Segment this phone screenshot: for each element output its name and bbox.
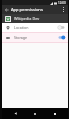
button[interactable]: Back: [2, 5, 11, 14]
button[interactable]: Back: [8, 108, 22, 119]
button[interactable]: On: [58, 35, 65, 40]
staticText: App permissions: [11, 7, 59, 12]
button[interactable]: Home: [28, 108, 42, 119]
staticText: 12:00: [58, 1, 66, 5]
button[interactable]: Wikipedia Dev: [2, 14, 68, 23]
staticText: Wikipedia Dev: [14, 16, 40, 21]
button[interactable]: Off: [58, 25, 65, 30]
button[interactable]: Storage: [2, 33, 68, 42]
button[interactable]: Recent apps: [48, 108, 62, 119]
button[interactable]: More options: [59, 5, 68, 14]
staticText: Storage: [14, 35, 58, 40]
staticText: Location: [14, 25, 58, 30]
button[interactable]: Location: [2, 23, 68, 32]
